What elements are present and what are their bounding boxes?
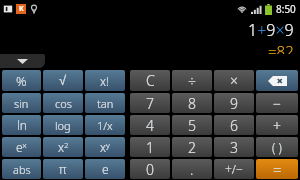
button[interactable]: × xyxy=(214,70,254,91)
staticText: xy xyxy=(100,139,110,155)
staticText: x2 xyxy=(58,139,69,155)
staticText: 8 xyxy=(188,94,196,113)
button[interactable]: Show advanced panel xyxy=(0,54,45,68)
button[interactable]: . xyxy=(172,159,212,179)
staticText: abs xyxy=(13,162,31,177)
button[interactable]: π xyxy=(43,159,83,179)
staticText: C xyxy=(146,71,155,90)
button[interactable]: + xyxy=(256,115,298,135)
button[interactable]: e xyxy=(85,159,125,179)
staticText: ln xyxy=(17,117,27,133)
staticText: +/− xyxy=(225,161,243,177)
staticText: . xyxy=(190,160,194,179)
button[interactable]: Backspace xyxy=(256,70,298,91)
button[interactable]: abs xyxy=(2,159,41,179)
staticText: K xyxy=(19,4,24,14)
staticText: =82 xyxy=(268,41,294,54)
button[interactable]: ÷ xyxy=(172,70,212,91)
staticText: 2 xyxy=(188,138,196,157)
staticText: − xyxy=(273,94,281,113)
button[interactable]: sin xyxy=(2,93,41,113)
button[interactable]: +/− xyxy=(214,159,254,179)
button[interactable]: % xyxy=(2,70,41,91)
staticText: × xyxy=(230,71,238,90)
staticText: e xyxy=(102,161,109,177)
staticText: = xyxy=(273,159,282,179)
button[interactable]: 4 xyxy=(130,115,170,135)
staticText: cos xyxy=(55,96,72,111)
button[interactable]: ex xyxy=(2,137,41,157)
staticText: ex xyxy=(16,139,27,155)
button[interactable]: Equals xyxy=(256,159,298,179)
button[interactable]: 9 xyxy=(214,93,254,113)
button[interactable]: log xyxy=(43,115,83,135)
staticText: 8:50 xyxy=(276,2,296,16)
button[interactable]: 6 xyxy=(214,115,254,135)
staticText: 9 xyxy=(230,94,238,113)
button[interactable]: 2 xyxy=(172,137,212,157)
button[interactable]: ln xyxy=(2,115,41,135)
staticText: + xyxy=(273,116,281,135)
staticText: 0 xyxy=(146,160,154,179)
staticText: sin xyxy=(14,96,29,111)
button[interactable]: − xyxy=(256,93,298,113)
staticText: 7 xyxy=(146,94,154,113)
staticText: 6 xyxy=(230,116,238,135)
button[interactable]: ( ) xyxy=(256,137,298,157)
staticText: √ xyxy=(59,73,67,88)
staticText: π xyxy=(59,161,67,177)
staticText: ( ) xyxy=(272,139,282,155)
staticText: 3 xyxy=(230,138,238,157)
button[interactable]: √ xyxy=(43,70,83,91)
button[interactable]: 1/x xyxy=(85,115,125,135)
staticText: ÷ xyxy=(188,71,196,90)
button[interactable]: 5 xyxy=(172,115,212,135)
button[interactable]: C xyxy=(130,70,170,91)
button[interactable]: x! xyxy=(85,70,125,91)
staticText: 4 xyxy=(146,116,154,135)
staticText: tan xyxy=(97,96,114,111)
button[interactable]: 7 xyxy=(130,93,170,113)
button[interactable]: cos xyxy=(43,93,83,113)
button[interactable]: 1 xyxy=(130,137,170,157)
button[interactable]: tan xyxy=(85,93,125,113)
button[interactable]: 3 xyxy=(214,137,254,157)
button[interactable]: xy xyxy=(85,137,125,157)
staticText: 1/x xyxy=(97,118,113,133)
button[interactable]: 0 xyxy=(130,159,170,179)
button[interactable]: x2 xyxy=(43,137,83,157)
staticText: 1 xyxy=(146,138,154,157)
staticText: % xyxy=(16,72,27,90)
staticText: 1+9×9 xyxy=(248,19,294,41)
button[interactable]: 8 xyxy=(172,93,212,113)
staticText: log xyxy=(55,118,71,133)
staticText: 5 xyxy=(188,116,196,135)
staticText: x! xyxy=(100,73,110,89)
